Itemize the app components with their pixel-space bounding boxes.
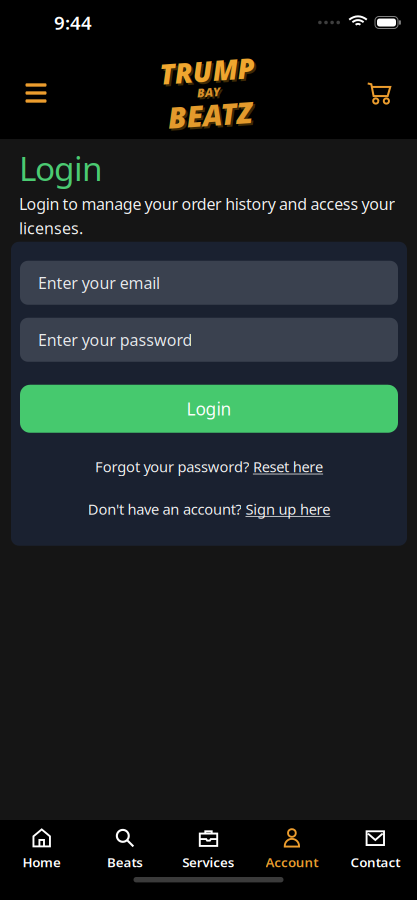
button[interactable]: Beats [83,827,167,871]
staticText: 9:44 [54,10,92,35]
staticText: Login [19,146,103,190]
button[interactable]: Forgot your password? [95,457,323,476]
button[interactable]: Enter your password [20,318,398,362]
staticText: Login to manage your order history and a… [19,193,395,214]
button[interactable]: Account [250,827,334,871]
staticText: Account [265,853,318,871]
button[interactable]: Enter your email [20,261,398,305]
staticText: Home [22,853,61,871]
button[interactable] [361,75,397,111]
staticText: licenses. [19,217,83,239]
staticText: Contact [350,853,400,871]
staticText: Enter your password [38,329,192,350]
button[interactable]: Services [167,827,250,871]
button[interactable]: Login [20,385,398,433]
staticText: BAY [197,84,220,100]
staticText: Login [186,397,231,420]
staticText: BEATZ [166,95,251,134]
staticText: TRUMP [161,52,256,89]
staticText: BEATZ [168,97,253,136]
staticText: Reset here [253,457,323,476]
staticText: Services [182,853,235,871]
staticText: BAY [199,86,222,102]
button[interactable]: Don't have an account? [88,499,330,519]
staticText: Forgot your password? [95,457,249,476]
staticText: Sign up here [245,499,330,519]
button[interactable]: Contact [334,827,417,871]
staticText: Don't have an account? [88,499,241,519]
button[interactable]: Home [0,827,83,871]
staticText: TRUMP [163,54,258,91]
staticText: Enter your email [38,272,160,293]
button[interactable] [19,76,53,110]
staticText: Beats [107,853,143,871]
